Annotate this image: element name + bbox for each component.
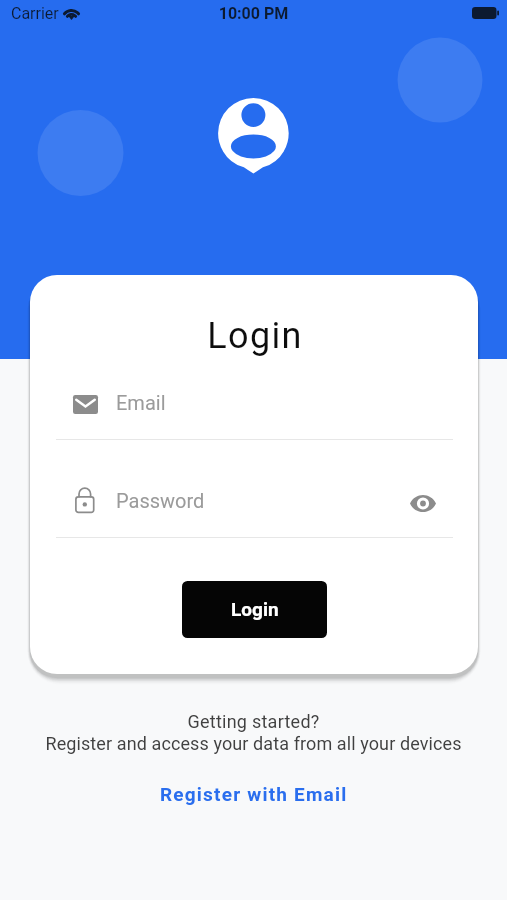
staticText: Register with Email [160,783,348,805]
button[interactable]: Login [182,581,327,638]
staticText: Carrier [11,4,59,23]
staticText: Login [31,315,478,357]
button[interactable]: Show password [403,483,443,523]
button[interactable]: Email [56,385,453,440]
staticText: Login [231,598,279,620]
button[interactable]: Password [56,482,453,538]
staticText: Password [116,489,205,512]
staticText: 10:00 PM [0,4,507,23]
staticText: Register and access your data from all y… [0,733,507,754]
staticText: Email [116,391,166,414]
staticText: Getting started? [0,711,507,732]
button[interactable]: Register with Email [140,777,367,807]
